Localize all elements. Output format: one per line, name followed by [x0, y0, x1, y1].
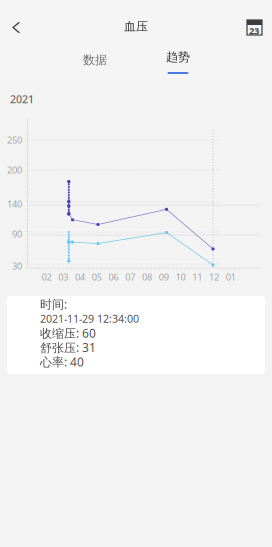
staticText: 09 — [159, 271, 169, 283]
staticText: 08 — [142, 271, 152, 283]
staticText: 03 — [58, 271, 68, 283]
staticText: 30 — [12, 260, 22, 272]
button[interactable]: 数据 — [65, 46, 125, 74]
staticText: 05 — [92, 271, 102, 283]
staticText: 01 — [226, 271, 236, 283]
button[interactable]: 趋势 — [148, 46, 208, 74]
staticText: 11 — [192, 271, 202, 283]
staticText: 10 — [176, 271, 186, 283]
button[interactable]: Back — [2, 10, 32, 44]
staticText: 趋势 — [166, 50, 190, 64]
staticText: 12 — [209, 271, 219, 283]
staticText: 200 — [7, 164, 22, 176]
staticText: 07 — [125, 271, 135, 283]
staticText: 2021 — [10, 92, 34, 106]
staticText: 02 — [42, 271, 52, 283]
staticText: 23 — [249, 24, 259, 37]
staticText: 心率: 40 — [40, 354, 84, 370]
staticText: 收缩压: 60 — [40, 325, 96, 341]
staticText: 06 — [109, 271, 119, 283]
staticText: 140 — [7, 198, 22, 210]
staticText: 04 — [75, 271, 85, 283]
staticText: 250 — [7, 134, 22, 146]
staticText: 舒张压: 31 — [40, 339, 96, 355]
staticText: 数据 — [83, 53, 107, 67]
staticText: 时间: — [40, 296, 67, 312]
button[interactable]: Calendar — [240, 10, 270, 44]
staticText: 2021-11-29 12:34:00 — [40, 311, 139, 326]
staticText: 90 — [12, 228, 22, 240]
staticText: 血压 — [124, 19, 148, 34]
